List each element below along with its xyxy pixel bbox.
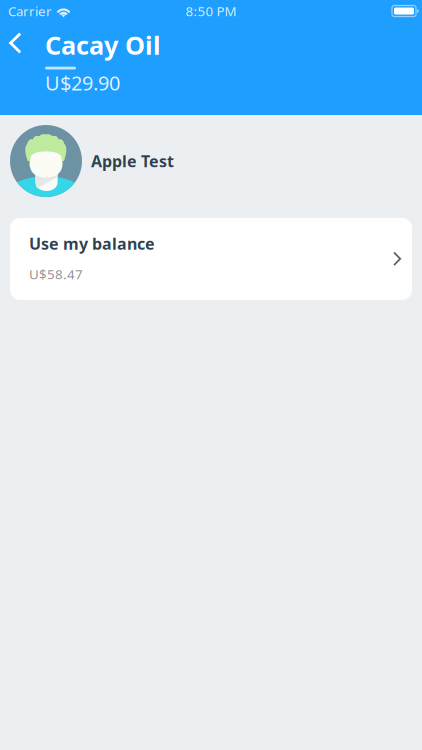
button[interactable]: Use my balance <box>10 218 412 300</box>
staticText: U$58.47 <box>29 265 83 283</box>
staticText: Cacay Oil <box>45 28 161 62</box>
staticText: Carrier <box>8 2 52 20</box>
staticText: U$29.90 <box>45 69 120 96</box>
staticText: 8:50 PM <box>185 2 236 20</box>
button[interactable]: Back <box>0 28 33 64</box>
staticText: Apple Test <box>91 150 174 172</box>
staticText: Use my balance <box>29 233 155 254</box>
